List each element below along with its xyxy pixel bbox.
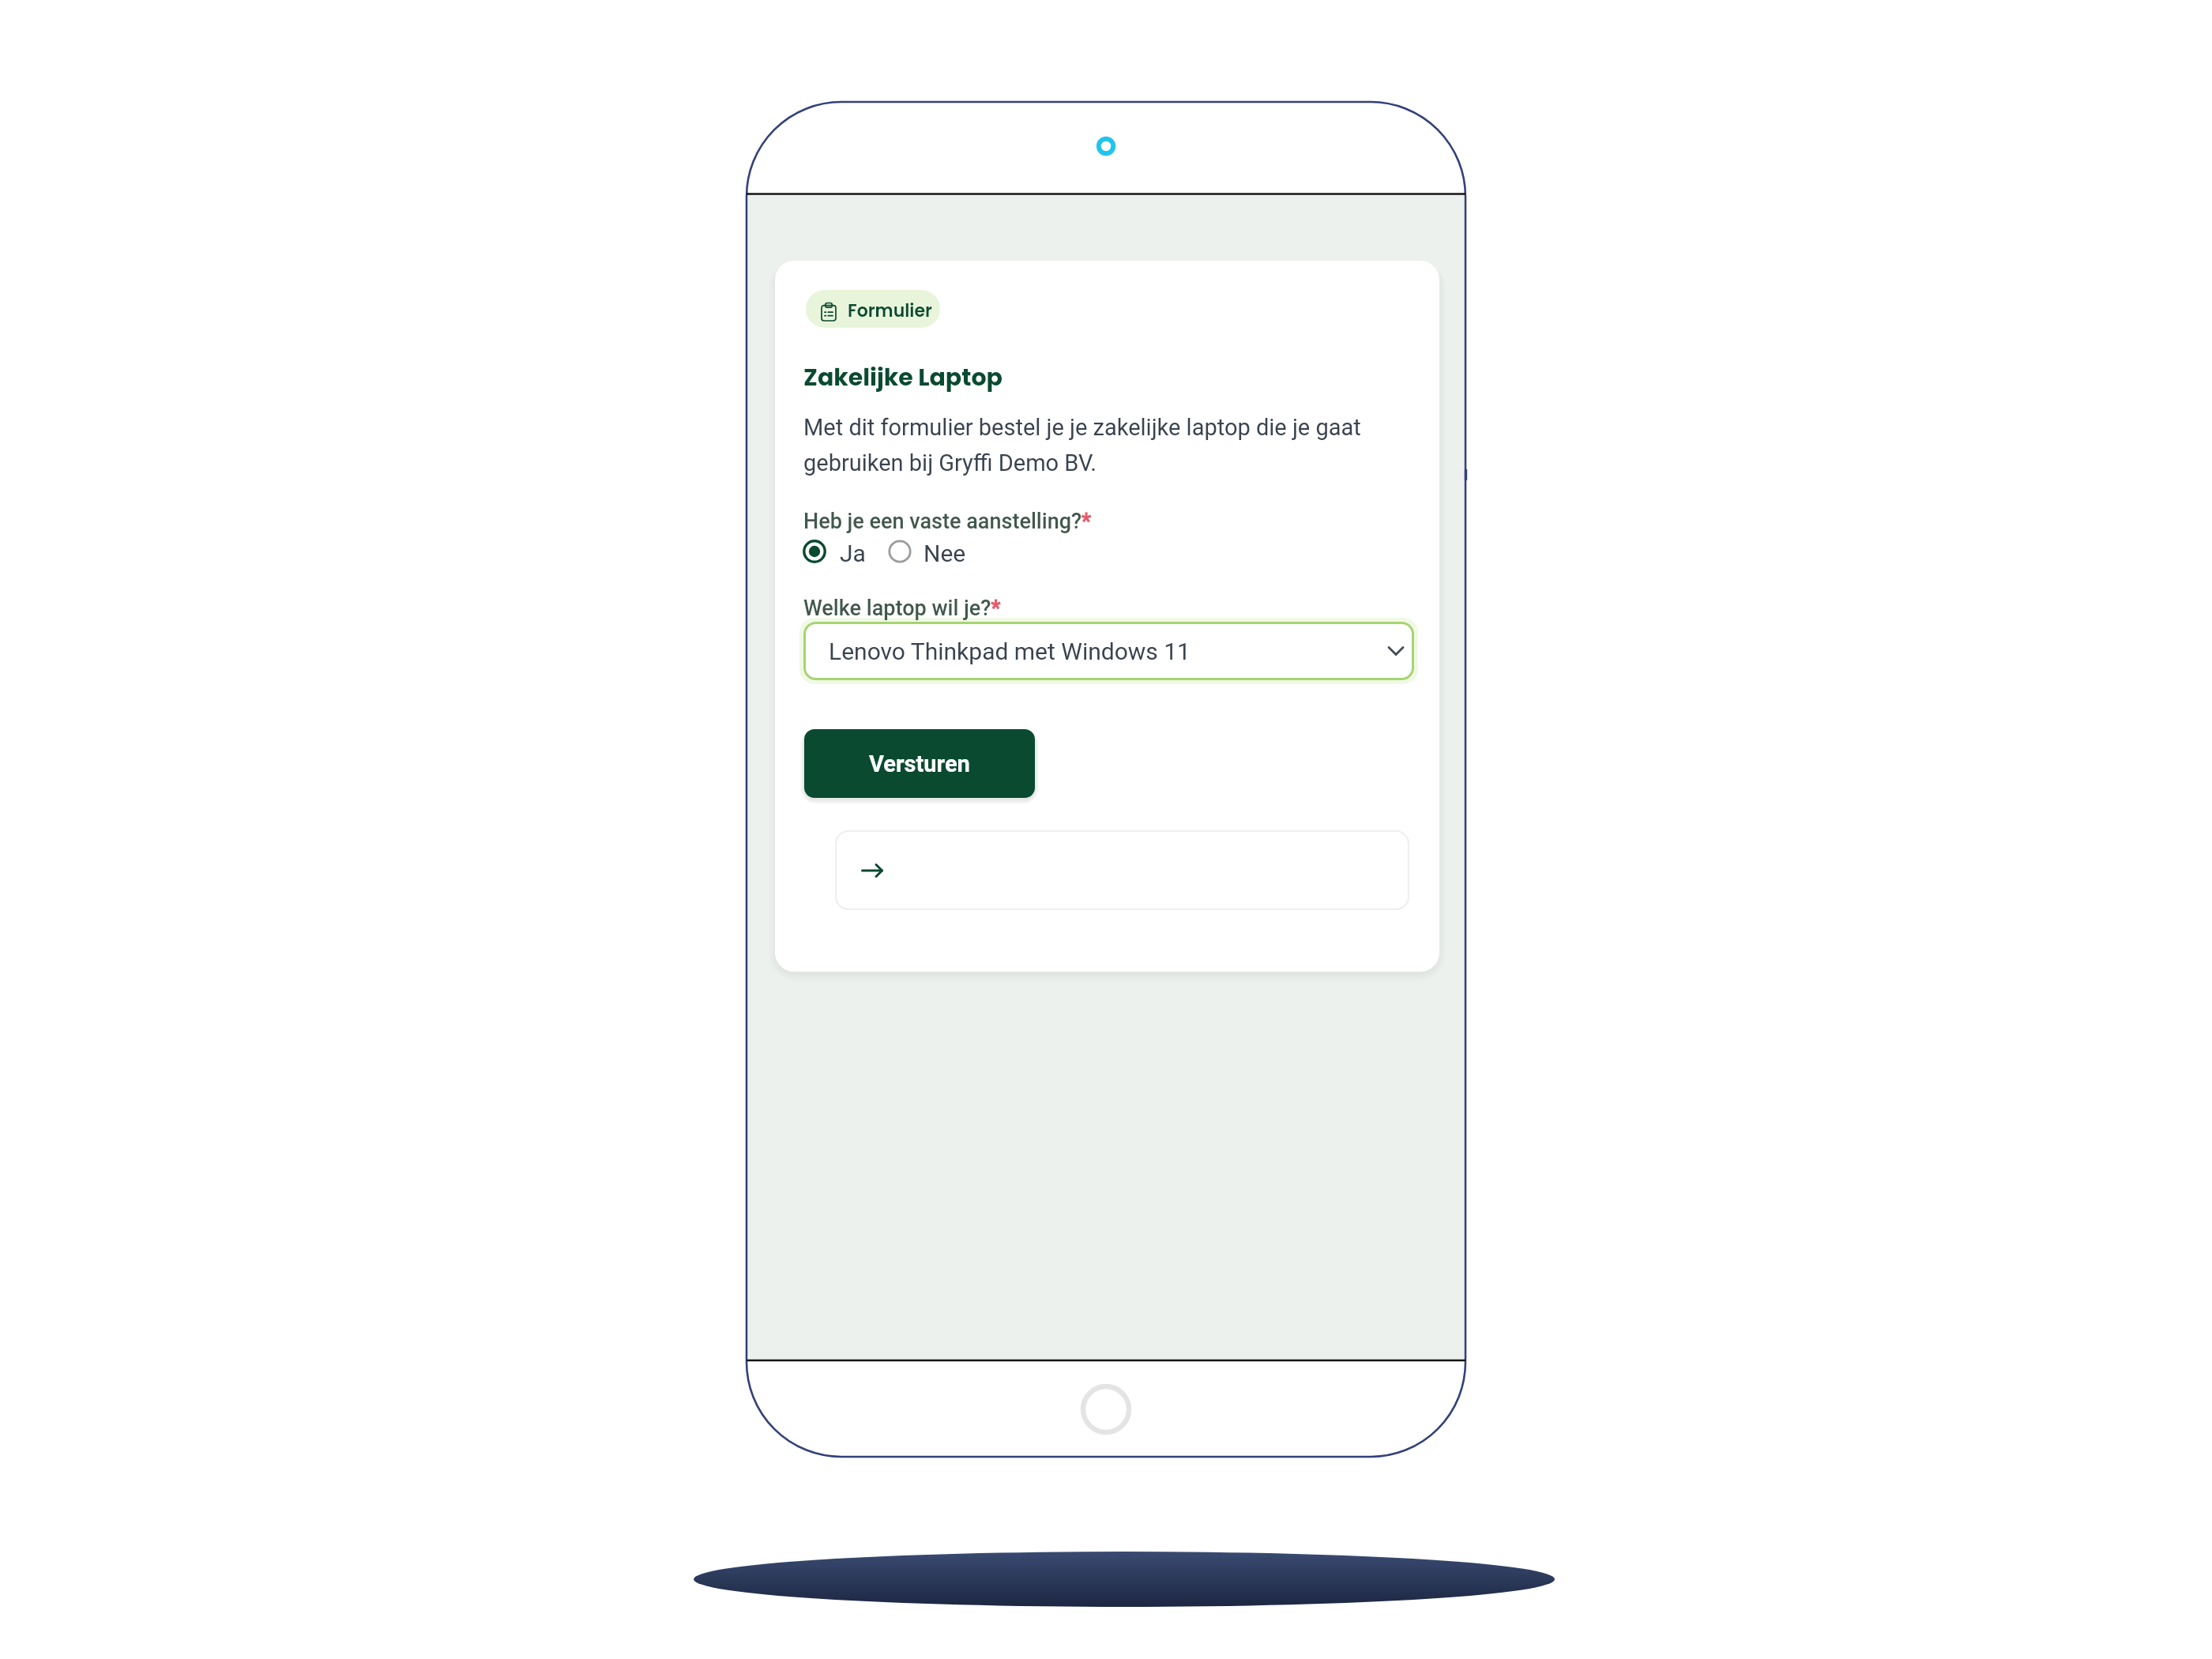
button[interactable]: Welke laptop wil je [803, 622, 1414, 680]
staticText: Welke laptop wil je?* [803, 596, 1001, 621]
staticText: Versturen [869, 750, 970, 777]
staticText: Zakelijke Laptop [803, 361, 1003, 394]
staticText: Met dit formulier bestel je je zakelijke… [803, 414, 1420, 476]
staticText: Nee [924, 540, 966, 567]
button[interactable]: Nee [888, 538, 977, 566]
staticText: Heb je een vaste aanstelling?* [803, 509, 1092, 534]
staticText: Lenovo Thinkpad met Windows 11 [829, 638, 1191, 665]
button[interactable]: Volgende [835, 830, 1409, 910]
staticText: Ja [840, 540, 866, 567]
staticText: Formulier [848, 299, 932, 323]
button[interactable]: Ja [803, 538, 876, 566]
button[interactable]: Versturen [804, 729, 1035, 798]
